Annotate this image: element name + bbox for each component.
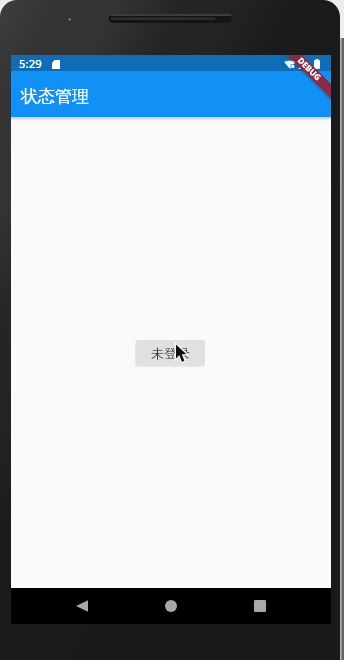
- button[interactable]: 未登录: [136, 340, 205, 365]
- button[interactable]: Home: [147, 588, 195, 624]
- button[interactable]: Recents: [236, 588, 284, 624]
- staticText: 状态管理: [21, 86, 89, 107]
- staticText: 5:29: [19, 56, 42, 72]
- staticText: DEBUG: [296, 55, 324, 83]
- button[interactable]: Back: [58, 588, 106, 624]
- staticText: 未登录: [151, 345, 190, 361]
